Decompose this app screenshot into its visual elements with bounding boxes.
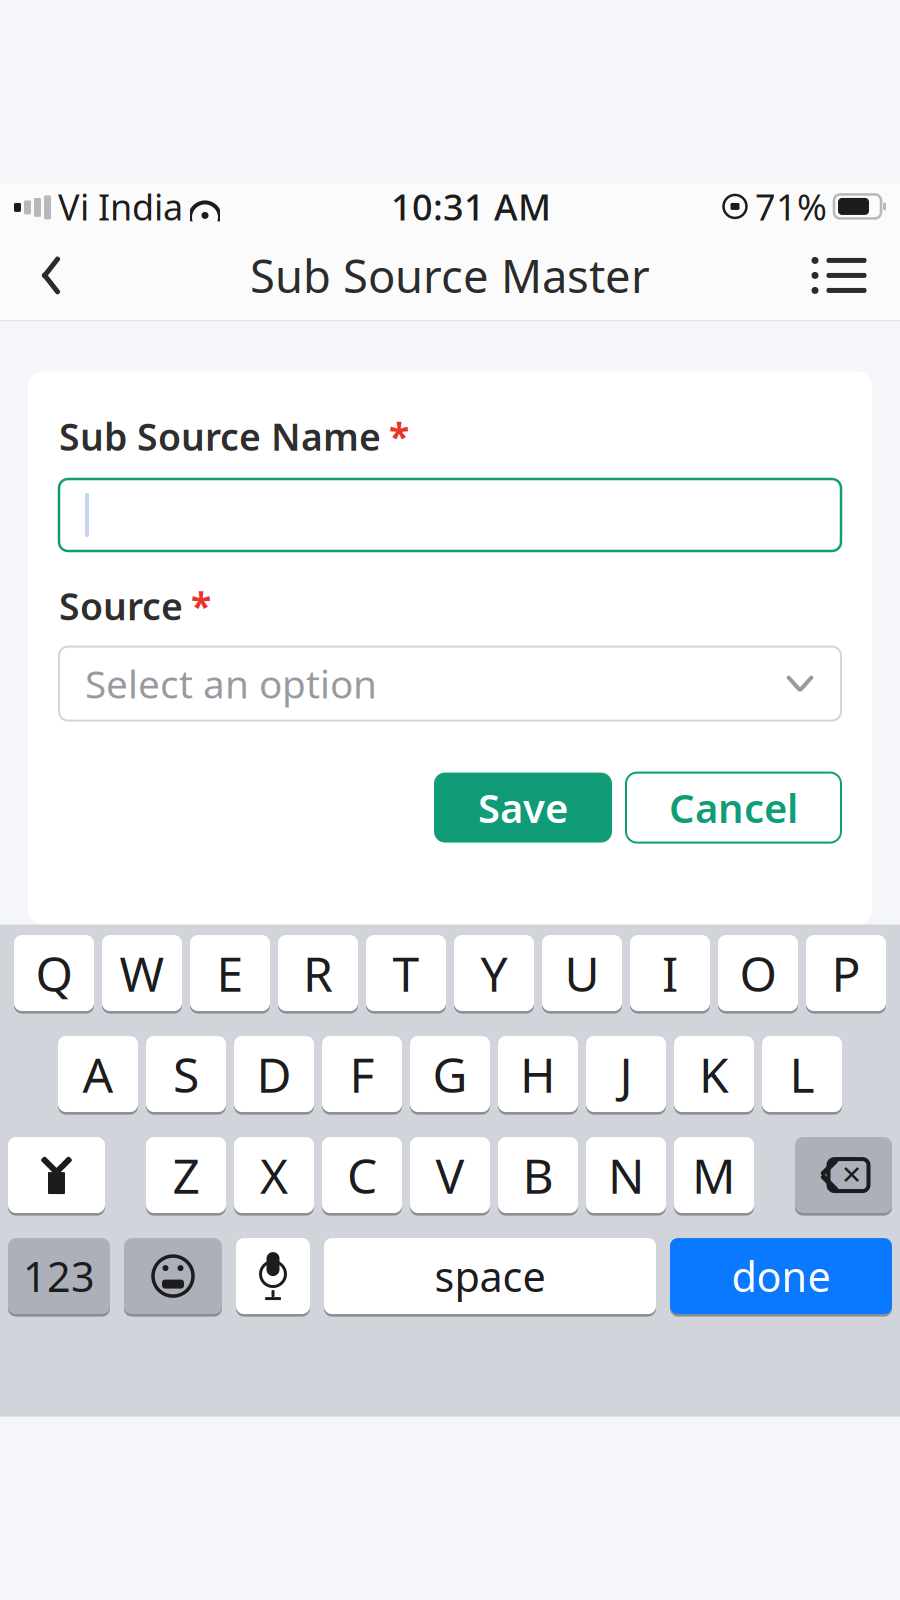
button[interactable]: Emoji <box>124 1237 222 1316</box>
button[interactable]: A <box>58 1035 138 1114</box>
button[interactable]: G <box>410 1035 490 1114</box>
staticText: * <box>191 581 211 631</box>
button[interactable]: I <box>630 934 710 1013</box>
button[interactable]: E <box>190 934 270 1013</box>
button[interactable]: Y <box>454 934 534 1013</box>
staticText: J <box>619 1042 632 1106</box>
staticText: Sub Source Master <box>250 245 650 305</box>
button[interactable]: W <box>102 934 182 1013</box>
staticText: T <box>392 941 419 1005</box>
button[interactable]: J <box>586 1035 666 1114</box>
button[interactable]: U <box>542 934 622 1013</box>
button[interactable]: H <box>498 1035 578 1114</box>
staticText: L <box>789 1042 814 1106</box>
staticText: G <box>432 1042 467 1106</box>
button[interactable]: Dictation <box>236 1237 310 1316</box>
staticText: ✕ <box>841 1161 862 1189</box>
button[interactable]: 123 <box>8 1237 110 1316</box>
button[interactable]: space <box>324 1237 656 1316</box>
staticText: M <box>692 1143 736 1207</box>
staticText: Vi India <box>58 182 183 230</box>
staticText: S <box>173 1042 199 1106</box>
staticText: O <box>739 941 776 1005</box>
staticText: H <box>520 1042 556 1106</box>
button[interactable]: Select an option <box>59 647 841 721</box>
staticText: E <box>216 941 243 1005</box>
staticText: 71% <box>755 182 827 230</box>
button[interactable]: L <box>762 1035 842 1114</box>
staticText: Cancel <box>669 781 798 834</box>
button[interactable]: S <box>146 1035 226 1114</box>
staticText: Sub Source Name <box>59 411 381 461</box>
button[interactable]: Z <box>146 1136 226 1215</box>
button[interactable]: done <box>670 1237 892 1316</box>
staticText: N <box>608 1143 644 1207</box>
button[interactable]: C <box>322 1136 402 1215</box>
staticText: Select an option <box>85 658 377 709</box>
button[interactable]: Back <box>14 241 88 309</box>
button[interactable]: Save <box>434 773 612 843</box>
staticText: 10:31 AM <box>391 182 551 230</box>
staticText: A <box>82 1042 113 1106</box>
staticText: I <box>662 941 678 1005</box>
staticText: Q <box>35 941 72 1005</box>
button[interactable]: Delete <box>795 1136 892 1215</box>
button[interactable]: Cancel <box>626 773 841 843</box>
button[interactable]: M <box>674 1136 754 1215</box>
staticText: X <box>260 1143 288 1207</box>
staticText: * <box>389 411 409 461</box>
staticText: done <box>731 1249 830 1303</box>
staticText: W <box>119 941 164 1005</box>
staticText: Save <box>478 781 568 834</box>
button[interactable]: N <box>586 1136 666 1215</box>
staticText: Z <box>172 1143 199 1207</box>
button[interactable] <box>59 479 841 551</box>
staticText: V <box>435 1143 464 1207</box>
button[interactable]: O <box>718 934 798 1013</box>
button[interactable]: K <box>674 1035 754 1114</box>
button[interactable]: Q <box>14 934 94 1013</box>
staticText: F <box>349 1042 374 1106</box>
button[interactable]: D <box>234 1035 314 1114</box>
button[interactable]: V <box>410 1136 490 1215</box>
button[interactable]: X <box>234 1136 314 1215</box>
staticText: P <box>831 941 860 1005</box>
staticText: D <box>256 1042 291 1106</box>
staticText: K <box>699 1042 729 1106</box>
staticText: 123 <box>23 1249 95 1303</box>
button[interactable]: R <box>278 934 358 1013</box>
button[interactable]: Menu <box>792 241 886 309</box>
staticText: B <box>522 1143 553 1207</box>
button[interactable]: B <box>498 1136 578 1215</box>
button[interactable]: Shift <box>8 1136 105 1215</box>
staticText: Source <box>59 581 183 631</box>
button[interactable]: F <box>322 1035 402 1114</box>
staticText: Y <box>480 941 507 1005</box>
staticText: C <box>347 1143 377 1207</box>
button[interactable]: P <box>806 934 886 1013</box>
staticText: R <box>303 941 333 1005</box>
staticText: U <box>564 941 599 1005</box>
staticText: space <box>434 1249 545 1303</box>
button[interactable]: T <box>366 934 446 1013</box>
